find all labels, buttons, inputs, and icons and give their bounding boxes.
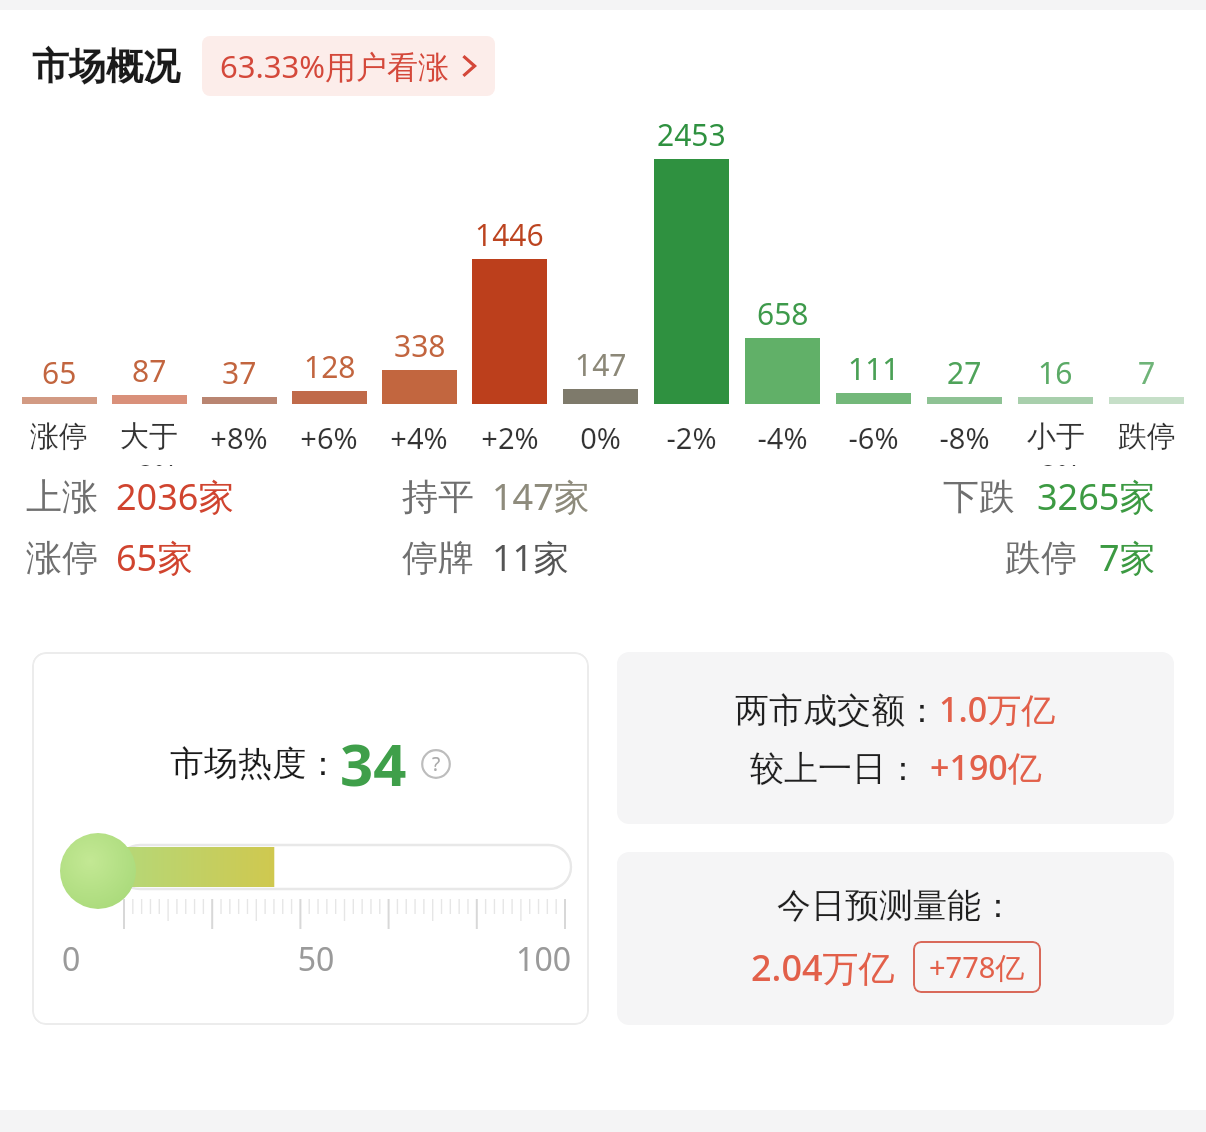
staticText: 停牌 [402,535,474,580]
staticText: 65 [42,352,77,393]
staticText: +190亿 [930,744,1042,790]
staticText: 两市成交额： [735,689,939,732]
staticText: ? [432,751,441,777]
staticText: 128 [304,346,356,387]
staticText: -2% [666,418,717,457]
staticText: 今日预测量能： [777,884,1015,927]
staticText: 2453 [657,114,726,155]
staticText: 65家 [116,533,194,582]
staticText: 持平 [402,474,474,519]
staticText: 11家 [492,533,570,582]
staticText: 338 [394,325,446,366]
button[interactable]: 市场热度： [32,652,589,1025]
staticText: -6% [848,418,899,457]
staticText: 2.04万亿 [751,943,895,992]
staticText: +8% [210,418,268,457]
staticText: 涨停 [30,418,88,455]
staticText: 7 [1138,352,1156,393]
staticText: 7家 [1099,533,1156,582]
staticText: +6% [300,418,358,457]
staticText: -8% [939,418,990,457]
staticText: 147家 [492,472,590,521]
staticText: 50 [231,937,401,981]
staticText: 658 [757,293,809,334]
staticText: 大于 [120,418,178,455]
staticText: 34 [340,724,407,803]
button[interactable]: 63.33%用户看涨 [202,36,495,96]
staticText: 147 [575,344,627,385]
button[interactable]: 帮助说明 [421,749,451,779]
staticText: 市场热度： [170,742,340,785]
staticText: -8% [1030,455,1081,466]
staticText: 上涨 [26,474,98,519]
staticText: 小于 [1027,418,1085,455]
staticText: 下跌 [943,474,1015,519]
staticText: +2% [481,418,539,457]
staticText: 16 [1038,352,1073,393]
staticText: 2036家 [116,472,235,521]
button[interactable]: 两市成交额： [617,652,1174,824]
staticText: 市场概况 [32,43,180,90]
staticText: 1446 [475,214,544,255]
staticText: 3265家 [1037,472,1156,521]
staticText: 1.0万亿 [939,686,1056,732]
staticText: 27 [947,352,982,393]
staticText: +4% [390,418,448,457]
button[interactable]: 今日预测量能： [617,852,1174,1025]
staticText: 0 [62,937,231,981]
staticText: +778亿 [929,947,1025,987]
staticText: +8% [120,455,178,466]
staticText: 涨停 [26,535,98,580]
staticText: 跌停 [1005,535,1077,580]
staticText: 跌停 [1118,418,1176,455]
staticText: 0% [580,418,621,457]
staticText: 111 [848,348,900,389]
staticText: -4% [757,418,808,457]
staticText: 63.33%用户看涨 [220,45,449,87]
staticText: 37 [222,352,257,393]
staticText: 较上一日： [750,747,920,790]
staticText: 87 [132,350,167,391]
staticText: 100 [401,937,571,981]
